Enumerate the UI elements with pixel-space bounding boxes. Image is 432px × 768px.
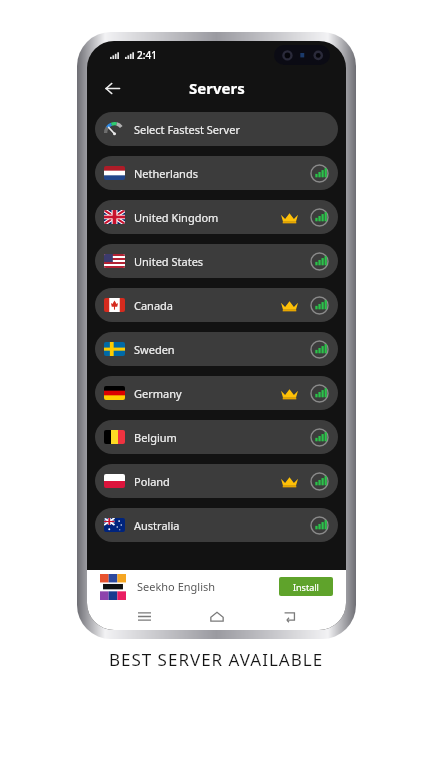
button[interactable]: Home bbox=[202, 603, 232, 630]
staticText: 2:41 bbox=[137, 48, 157, 62]
staticText: Germany bbox=[134, 386, 182, 401]
staticText: Canada bbox=[134, 298, 174, 313]
staticText: Belgium bbox=[134, 430, 177, 445]
button[interactable]: Install bbox=[279, 577, 333, 596]
button[interactable]: Germany bbox=[95, 376, 338, 410]
staticText: Sweden bbox=[134, 342, 175, 357]
staticText: Select Fastest Server bbox=[134, 122, 240, 137]
button[interactable]: Poland bbox=[95, 464, 338, 498]
button[interactable]: United Kingdom bbox=[95, 200, 338, 234]
button[interactable]: Recent apps bbox=[129, 603, 159, 630]
button[interactable]: Select Fastest Server bbox=[95, 112, 338, 146]
staticText: Install bbox=[293, 581, 319, 593]
staticText: Netherlands bbox=[134, 166, 198, 181]
button[interactable]: Belgium bbox=[95, 420, 338, 454]
button[interactable]: Back bbox=[274, 603, 304, 630]
staticText: United States bbox=[134, 254, 204, 269]
button[interactable]: Sweden bbox=[95, 332, 338, 366]
staticText: United Kingdom bbox=[134, 210, 219, 225]
staticText: Australia bbox=[134, 518, 180, 533]
button[interactable]: Seekho English bbox=[87, 570, 346, 603]
button[interactable]: Canada bbox=[95, 288, 338, 322]
staticText: BEST SERVER AVAILABLE bbox=[0, 648, 432, 671]
button[interactable]: Back bbox=[99, 75, 125, 101]
button[interactable]: Netherlands bbox=[95, 156, 338, 190]
button[interactable]: Australia bbox=[95, 508, 338, 542]
staticText: Servers bbox=[189, 78, 245, 98]
staticText: Seekho English bbox=[137, 579, 216, 594]
staticText: Poland bbox=[134, 474, 170, 489]
button[interactable]: United States bbox=[95, 244, 338, 278]
